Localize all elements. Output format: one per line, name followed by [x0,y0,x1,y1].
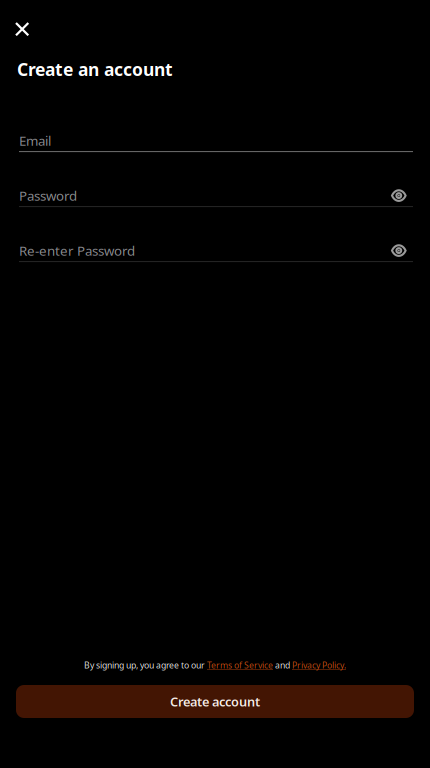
button[interactable]: Show Password [385,188,413,204]
staticText: Email [19,131,51,150]
button[interactable]: Create account [16,685,414,718]
staticText: Create account [170,693,260,710]
button[interactable]: Show Re-enter Password [385,243,413,259]
staticText: and [273,659,292,671]
staticText: Privacy Policy. [292,659,346,671]
staticText: Terms of Service [207,659,273,671]
button[interactable]: Close [0,0,42,45]
staticText: Password [19,186,77,205]
staticText: Create an account [17,57,173,81]
staticText: By signing up, you agree to our [84,659,207,671]
staticText: Re-enter Password [19,241,135,260]
button[interactable]: Terms of Service [207,659,273,671]
button[interactable]: Privacy Policy. [292,659,346,671]
